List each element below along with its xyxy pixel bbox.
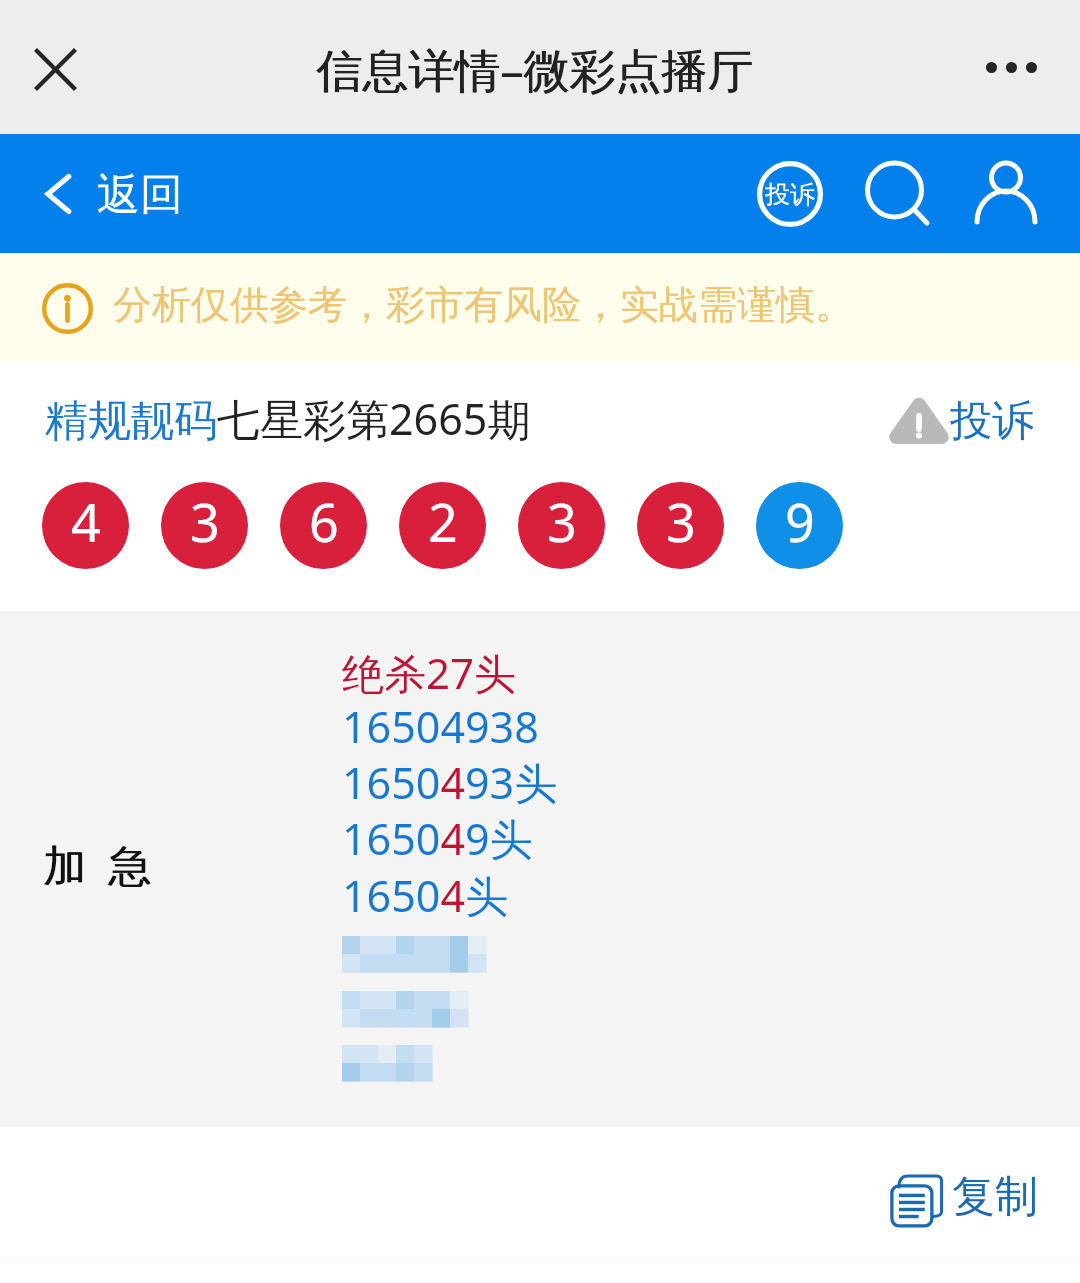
staticText: 165049头 (342, 809, 533, 868)
button[interactable]: 复制 (890, 1170, 1038, 1224)
staticText: 16504938 (342, 697, 539, 756)
staticText: 分析仅供参考，彩市有风险，实战需谨慎。 (113, 280, 854, 329)
staticText: 复制 (952, 1170, 1038, 1224)
staticText: 1650493头 (342, 753, 558, 812)
staticText: 投诉 (950, 395, 1034, 448)
button[interactable]: Search (856, 152, 940, 236)
staticText: 返回 (97, 168, 183, 222)
staticText: 3 (190, 486, 220, 557)
staticText: 投诉 (765, 179, 815, 210)
button[interactable]: Close (21, 35, 89, 103)
staticText: 4 (71, 486, 101, 557)
staticText: 16504头 (342, 866, 508, 925)
staticText: 绝杀27头 (342, 644, 517, 701)
button[interactable]: 返回 (46, 167, 183, 221)
staticText: 3 (547, 486, 577, 557)
staticText: 加 急 (43, 835, 152, 894)
button[interactable]: Account (964, 152, 1048, 236)
button[interactable]: 投诉 (890, 394, 1034, 447)
staticText: 信息详情–微彩点播厅 (316, 38, 753, 101)
button[interactable]: 投诉 (748, 152, 832, 236)
staticText: 加 急 (44, 835, 153, 894)
staticText: 信息详情–微彩点播厅 (317, 38, 754, 101)
staticText: 2 (428, 486, 458, 557)
button[interactable]: More options (956, 27, 1066, 107)
staticText: 6 (309, 486, 339, 557)
staticText: 3 (666, 486, 696, 557)
staticText: 9 (785, 486, 815, 557)
staticText: 精规靓码七星彩第2665期 (45, 389, 531, 448)
